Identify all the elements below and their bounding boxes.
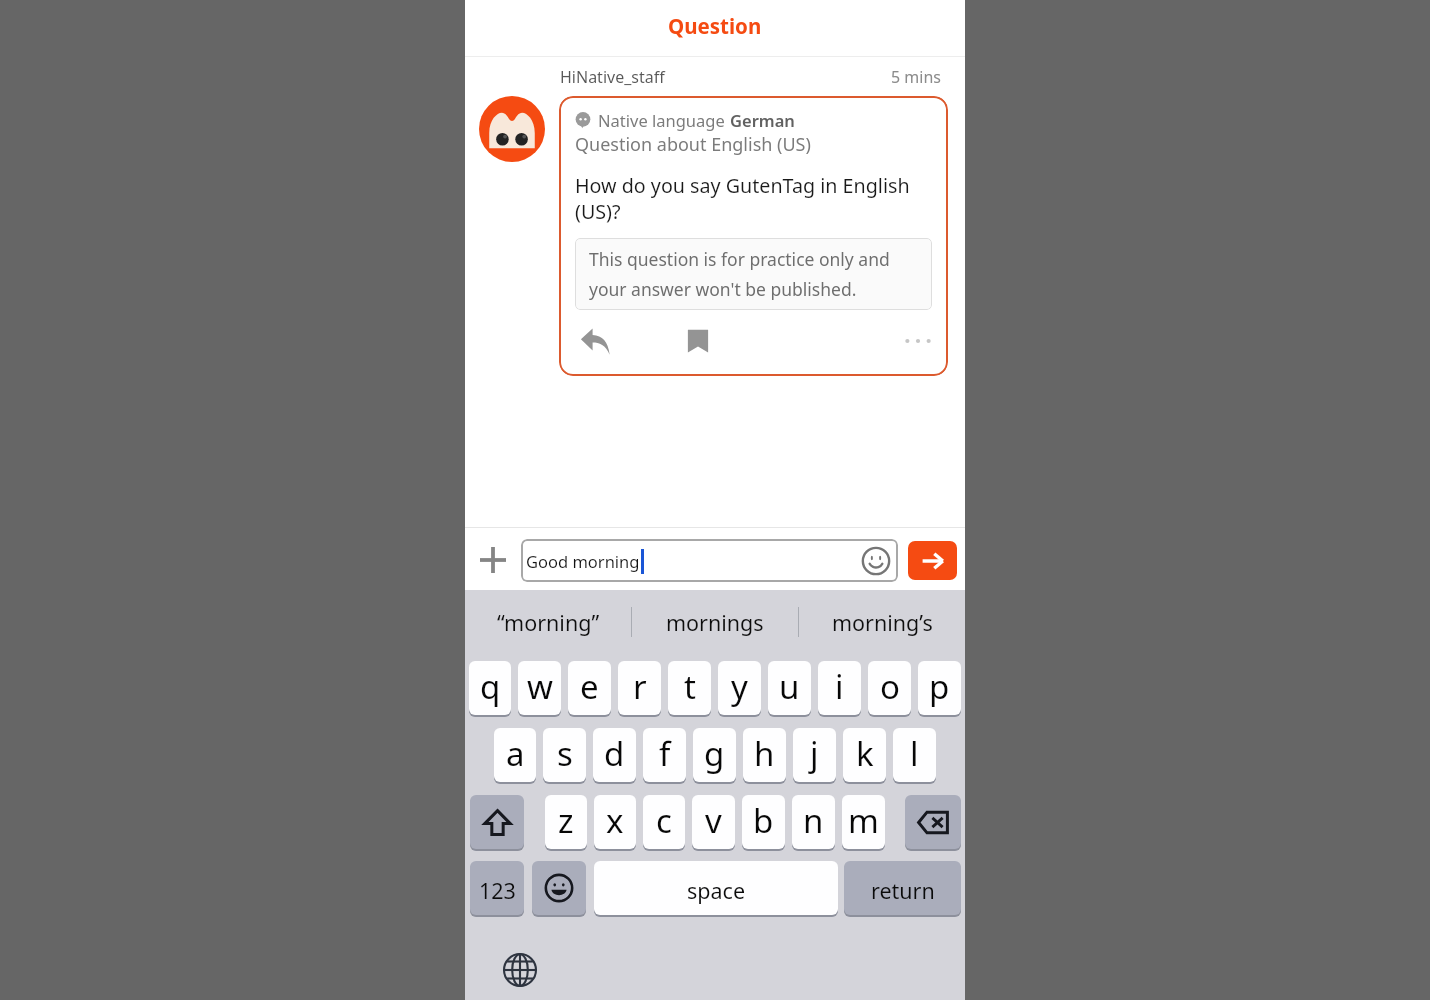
button[interactable]: h [743,728,786,782]
button[interactable]: u [768,661,811,715]
button[interactable]: z [545,795,587,849]
button[interactable]: Bookmark [678,321,718,361]
button[interactable]: mornings [632,590,798,654]
button[interactable]: f [643,728,686,782]
staticText: w [527,664,553,709]
staticText: l [910,731,919,776]
staticText: “morning” [497,608,600,637]
staticText: n [803,798,824,843]
button[interactable]: Backspace [905,795,961,849]
staticText: k [856,731,874,776]
staticText: 123 [479,876,516,905]
button[interactable]: Send [908,541,957,580]
staticText: e [580,664,599,709]
staticText: a [506,731,525,776]
button[interactable]: p [918,661,961,715]
staticText: mornings [666,608,764,637]
button[interactable]: Numbers [470,861,524,915]
staticText: return [871,876,935,905]
button[interactable]: i [818,661,861,715]
button[interactable]: s [543,728,586,782]
staticText: o [880,664,900,709]
button[interactable]: e [568,661,611,715]
staticText: morning’s [832,608,933,637]
button[interactable]: l [893,728,936,782]
button[interactable]: r [618,661,661,715]
staticText: s [557,731,573,776]
button[interactable]: morning’s [799,590,965,654]
staticText: h [754,731,775,776]
staticText: c [656,798,672,843]
button[interactable]: Native language [559,96,948,376]
staticText: x [606,798,624,843]
button[interactable]: a [494,728,536,782]
staticText: q [480,664,501,709]
staticText: 5 mins [891,66,941,88]
button[interactable]: d [593,728,636,782]
staticText: f [659,731,671,776]
button[interactable]: g [693,728,736,782]
button[interactable]: Emoji [532,861,586,915]
button[interactable]: Shift [470,795,524,849]
staticText: Question [668,12,762,40]
staticText: m [848,798,879,843]
button[interactable]: k [843,728,886,782]
staticText: b [753,798,774,843]
staticText: space [687,876,746,905]
button[interactable]: t [668,661,711,715]
staticText: j [810,731,819,776]
staticText: v [705,798,722,843]
staticText: This question is for practice only and y… [589,247,918,301]
button[interactable]: Good morning [521,539,898,582]
staticText: i [835,664,844,709]
staticText: Question about English (US) [575,132,811,157]
button[interactable]: Reply [575,321,615,361]
button[interactable]: “morning” [465,590,631,654]
button[interactable]: space [594,861,838,915]
staticText: z [558,798,574,843]
button[interactable]: n [792,795,835,849]
staticText: y [731,664,748,709]
staticText: HiNative_staff [560,66,665,88]
button[interactable]: w [518,661,561,715]
button[interactable]: Change keyboard [498,948,542,992]
staticText: d [604,731,625,776]
button[interactable]: o [868,661,911,715]
button[interactable]: More options [898,321,938,361]
button[interactable]: c [643,795,685,849]
staticText: u [779,664,800,709]
button[interactable]: Return [844,861,961,915]
button[interactable]: b [742,795,785,849]
staticText: Good morning [526,550,640,572]
button[interactable]: Add attachment [465,528,521,590]
button[interactable]: User avatar [479,96,545,162]
staticText: p [929,664,950,709]
staticText: How do you say GutenTag in English (US)? [575,172,932,225]
button[interactable]: q [469,661,511,715]
button[interactable]: x [594,795,636,849]
staticText: r [633,664,647,709]
staticText: g [704,731,725,776]
staticText: t [684,664,696,709]
button[interactable]: j [793,728,836,782]
staticText: Native language [598,109,730,131]
button[interactable]: m [842,795,885,849]
button[interactable]: y [718,661,761,715]
button[interactable]: v [692,795,735,849]
staticText: German [730,109,795,131]
